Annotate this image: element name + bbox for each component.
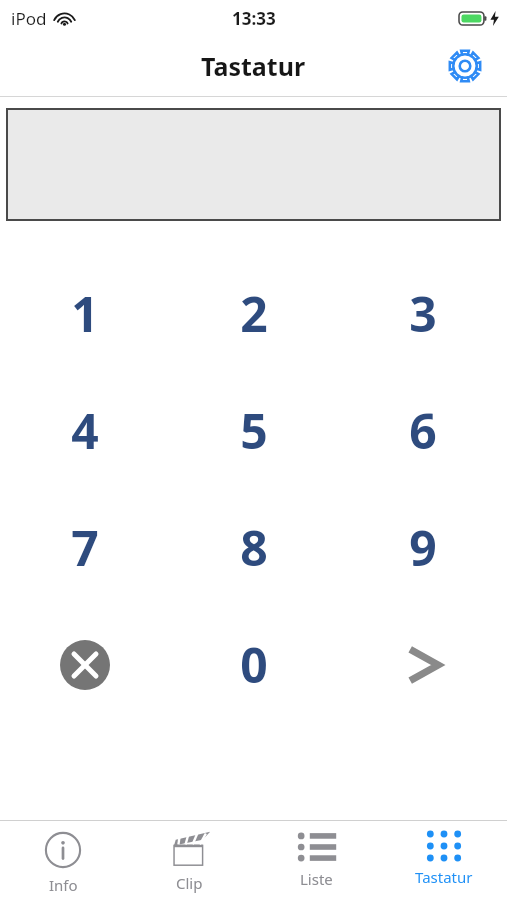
staticText: 13:33 <box>232 7 276 30</box>
staticText: Tastatur <box>415 867 473 887</box>
staticText: 8 <box>240 515 268 580</box>
button[interactable]: 2 <box>169 255 338 372</box>
staticText: iPod <box>11 7 47 30</box>
button[interactable]: 6 <box>338 372 507 489</box>
staticText: Tastatur <box>201 49 306 83</box>
button[interactable]: Clip <box>126 821 253 900</box>
staticText: 9 <box>409 515 437 580</box>
button[interactable]: Go <box>338 606 507 723</box>
button[interactable]: 9 <box>338 489 507 606</box>
staticText: Liste <box>300 869 333 889</box>
button[interactable]: 8 <box>169 489 338 606</box>
button[interactable]: 4 <box>0 372 169 489</box>
button[interactable]: 5 <box>169 372 338 489</box>
staticText: Info <box>49 875 78 895</box>
button[interactable]: Delete <box>0 606 169 723</box>
staticText: 5 <box>240 398 268 463</box>
staticText: 7 <box>71 515 99 580</box>
button[interactable]: 7 <box>0 489 169 606</box>
button[interactable]: Info <box>0 821 126 900</box>
button[interactable]: 0 <box>169 606 338 723</box>
staticText: 1 <box>71 281 99 346</box>
button[interactable] <box>6 108 501 221</box>
staticText: 3 <box>409 281 437 346</box>
staticText: 6 <box>409 398 437 463</box>
staticText: 0 <box>240 632 268 697</box>
staticText: 4 <box>71 398 99 463</box>
button[interactable]: 3 <box>338 255 507 372</box>
button[interactable]: Tastatur <box>380 821 507 900</box>
button[interactable]: Liste <box>253 821 380 900</box>
button[interactable]: 1 <box>0 255 169 372</box>
button[interactable]: Settings <box>443 44 487 88</box>
staticText: 2 <box>240 281 268 346</box>
staticText: Clip <box>176 873 203 893</box>
